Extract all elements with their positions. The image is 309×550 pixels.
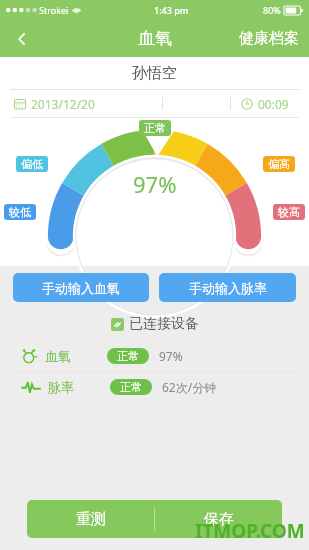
staticText: 手动输入脉率 — [189, 280, 267, 296]
button[interactable]: Back — [0, 20, 44, 57]
staticText: 00:09 — [258, 96, 289, 112]
staticText: 62次/分钟 — [162, 379, 217, 395]
button[interactable]: 手动输入脉率 — [159, 273, 296, 302]
staticText: 保存 — [204, 510, 234, 529]
staticText: 97% — [159, 348, 183, 364]
staticText: 重测 — [76, 510, 106, 529]
staticText: Strokei — [39, 4, 69, 16]
button[interactable]: 手动输入血氧 — [13, 273, 149, 302]
staticText: 血氧 — [138, 28, 172, 49]
staticText: 脉率 — [48, 379, 74, 395]
staticText: 较低 — [9, 205, 31, 219]
staticText: 偏高 — [268, 157, 290, 171]
staticText: 1:43 pm — [154, 4, 189, 16]
staticText: 2013/12/20 — [31, 96, 95, 112]
staticText: 正常 — [117, 349, 139, 363]
button[interactable]: 保存 — [155, 500, 282, 538]
staticText: 正常 — [120, 380, 142, 394]
staticText: 97% — [133, 169, 177, 199]
staticText: 偏低 — [21, 157, 43, 171]
staticText: 健康档案 — [239, 29, 299, 48]
staticText: ITMOP.COM — [195, 518, 305, 544]
staticText: 正常 — [144, 121, 166, 135]
staticText: 血氧 — [45, 348, 71, 364]
staticText: 手动输入血氧 — [42, 280, 120, 296]
staticText: 较高 — [278, 205, 300, 219]
button[interactable]: 重测 — [27, 500, 154, 538]
staticText: 已连接设备 — [129, 315, 199, 333]
staticText: 80% — [263, 4, 281, 16]
button[interactable]: 脉率 — [0, 372, 309, 402]
button[interactable]: 血氧 — [0, 341, 309, 371]
button[interactable]: 健康档案 — [229, 20, 309, 57]
staticText: 孙悟空 — [132, 64, 177, 83]
